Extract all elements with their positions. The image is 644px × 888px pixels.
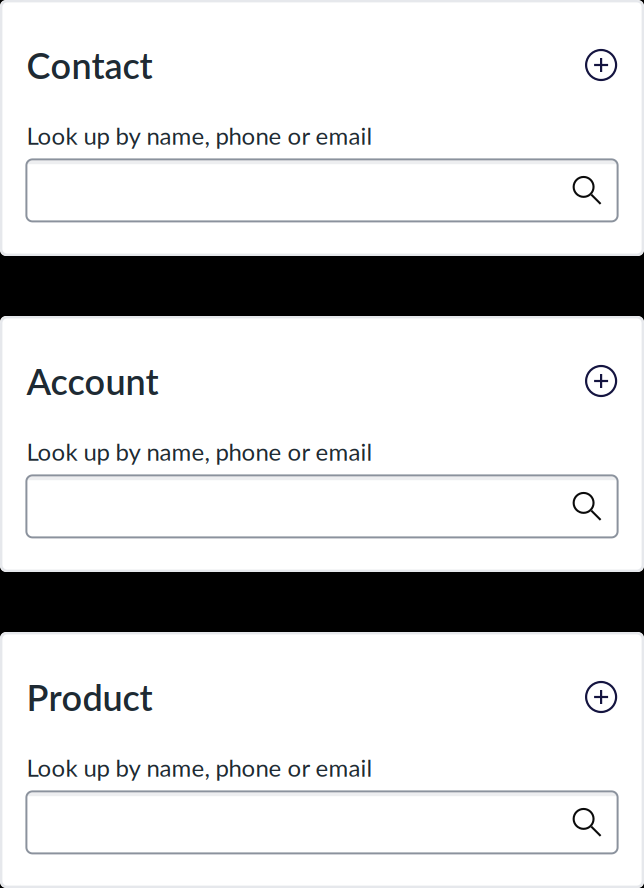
button[interactable]: Add Product xyxy=(574,675,618,719)
staticText: Product xyxy=(26,675,152,719)
button[interactable]: Search Contact xyxy=(26,159,618,221)
staticText: Look up by name, phone or email xyxy=(26,753,372,782)
staticText: Look up by name, phone or email xyxy=(26,121,372,150)
button[interactable]: Search Account xyxy=(26,475,618,537)
button[interactable]: Search Product xyxy=(26,791,618,853)
staticText: Account xyxy=(26,359,158,403)
staticText: Contact xyxy=(26,43,152,87)
button[interactable]: Add Contact xyxy=(574,43,618,87)
staticText: Look up by name, phone or email xyxy=(26,437,372,466)
button[interactable]: Add Account xyxy=(574,359,618,403)
